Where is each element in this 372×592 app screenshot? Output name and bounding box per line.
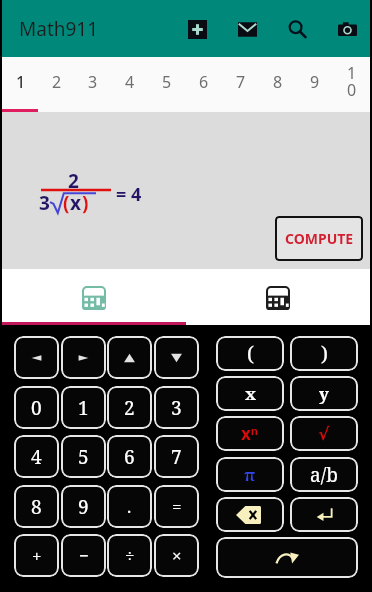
button[interactable]: π [216,457,284,492]
staticText: x [245,382,256,405]
button[interactable]: 4 [14,435,59,478]
button[interactable]: 9 [296,57,333,112]
button[interactable]: 8 [14,485,59,528]
button[interactable]: Search [286,18,308,40]
button[interactable]: 2 [107,386,152,429]
button[interactable]: Enter [290,497,358,532]
button[interactable]: 9 [61,485,106,528]
staticText: xⁿ [241,422,259,445]
staticText: = 4 [116,182,142,207]
staticText: 4 [124,71,135,93]
button[interactable]: 2 [38,57,74,112]
button[interactable]: Mail [236,18,258,40]
button[interactable]: 6 [185,57,222,112]
button[interactable]: x [216,376,284,411]
staticText: . [127,495,132,518]
staticText: 3 [87,71,98,93]
staticText: a/b [310,462,338,488]
staticText: 1 [15,71,26,93]
staticText: 5 [78,444,89,470]
button[interactable]: 5 [148,57,185,112]
button[interactable]: COMPUTE [275,216,363,261]
button[interactable]: ) [290,336,358,371]
staticText: 4 [31,444,42,470]
button[interactable]: = [154,485,199,528]
staticText: ÷ [125,544,135,567]
button[interactable]: Camera [336,18,358,40]
button[interactable]: 4 [111,57,148,112]
staticText: + [32,544,42,567]
button[interactable]: Left [14,336,59,379]
staticText: 3 [39,190,50,216]
staticText: x [70,190,81,216]
button[interactable]: y [290,376,358,411]
button[interactable]: 10 [333,57,370,112]
button[interactable]: . [107,485,152,528]
staticText: 2 [51,71,62,93]
staticText: 3 [171,395,182,421]
button[interactable]: 1 [61,386,106,429]
staticText: − [79,544,89,567]
staticText: √ [318,424,330,444]
staticText: 6 [124,444,135,470]
staticText: 8 [272,71,283,93]
staticText: = [172,495,182,518]
staticText: ) [82,190,89,216]
staticText: 6 [198,71,209,93]
staticText: 9 [309,71,320,93]
button[interactable]: xⁿ [216,416,284,451]
staticText: 2 [68,168,79,194]
button[interactable]: 7 [154,435,199,478]
button[interactable]: 3 [154,386,199,429]
button[interactable]: + [14,534,59,577]
staticText: y [319,382,329,405]
button[interactable]: Add [186,18,208,40]
button[interactable]: Scientific calculator [186,269,370,325]
button[interactable]: ÷ [107,534,152,577]
staticText: 7 [171,444,182,470]
button[interactable]: 0 [14,386,59,429]
button[interactable]: 1 [2,57,38,112]
staticText: ) [321,340,328,367]
staticText: 1 [78,395,89,421]
button[interactable]: ( [216,336,284,371]
staticText: 2 [124,395,135,421]
staticText: π [244,463,256,486]
staticText: 5 [161,71,172,93]
button[interactable]: Up [107,336,152,379]
staticText: 8 [31,494,42,520]
button[interactable]: Basic calculator [2,269,186,325]
button[interactable]: Right [61,336,106,379]
staticText: 10 [346,62,357,101]
staticText: × [172,544,182,567]
staticText: COMPUTE [285,229,354,248]
button[interactable]: 7 [222,57,259,112]
staticText: 7 [235,71,246,93]
button[interactable]: √ [290,416,358,451]
button[interactable]: × [154,534,199,577]
staticText: 9 [78,494,89,520]
button[interactable]: a/b [290,457,358,492]
button[interactable]: Backspace [216,497,284,532]
button[interactable]: 3 [74,57,111,112]
button[interactable]: − [61,534,106,577]
button[interactable]: 5 [61,435,106,478]
staticText: 0 [31,395,42,421]
button[interactable]: 6 [107,435,152,478]
button[interactable]: Redo [216,537,358,578]
staticText: Math911 [19,16,99,42]
staticText: ( [247,340,254,367]
button[interactable]: 8 [259,57,296,112]
button[interactable]: Down [154,336,199,379]
staticText: ( [63,190,70,216]
